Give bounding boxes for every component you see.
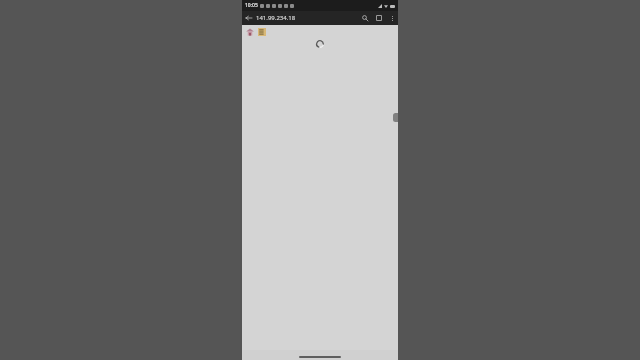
staticText: 10:05 bbox=[245, 2, 258, 9]
button[interactable]: Index bbox=[257, 27, 266, 36]
button[interactable]: Back bbox=[242, 11, 256, 25]
staticText: 141.99.234.18 bbox=[256, 14, 296, 22]
button[interactable]: More options bbox=[386, 12, 398, 24]
button[interactable]: Search bbox=[358, 11, 372, 25]
button[interactable]: Tabs bbox=[372, 11, 386, 25]
button[interactable]: Home gesture bbox=[299, 356, 341, 358]
button[interactable]: Home bbox=[245, 27, 254, 36]
button[interactable]: Drawer handle bbox=[393, 113, 398, 122]
